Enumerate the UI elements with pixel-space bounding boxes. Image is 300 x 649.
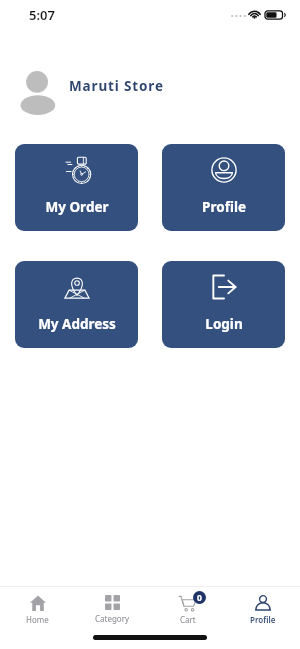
button[interactable]: 0 <box>150 591 225 629</box>
staticText: Profile <box>250 614 276 625</box>
staticText: Home <box>26 614 49 625</box>
staticText: My Address <box>38 315 116 333</box>
staticText: 5:07 <box>29 6 55 24</box>
button[interactable]: Profile <box>162 144 285 231</box>
staticText: Cart <box>180 614 196 625</box>
button[interactable]: Category <box>75 591 150 628</box>
button[interactable]: Home <box>0 591 75 629</box>
staticText: Maruti Store <box>69 77 164 95</box>
staticText: Login <box>205 315 243 333</box>
staticText: My Order <box>45 198 109 216</box>
staticText: Profile <box>202 198 246 216</box>
staticText: 0 <box>197 592 202 604</box>
staticText: Category <box>95 613 130 624</box>
button[interactable]: My Address <box>15 261 138 348</box>
button[interactable]: Profile <box>225 591 300 629</box>
button[interactable]: Profile picture <box>0 61 300 111</box>
button[interactable]: Login <box>162 261 285 348</box>
other: Profile picture <box>20 61 55 111</box>
button[interactable]: My Order <box>15 144 138 231</box>
